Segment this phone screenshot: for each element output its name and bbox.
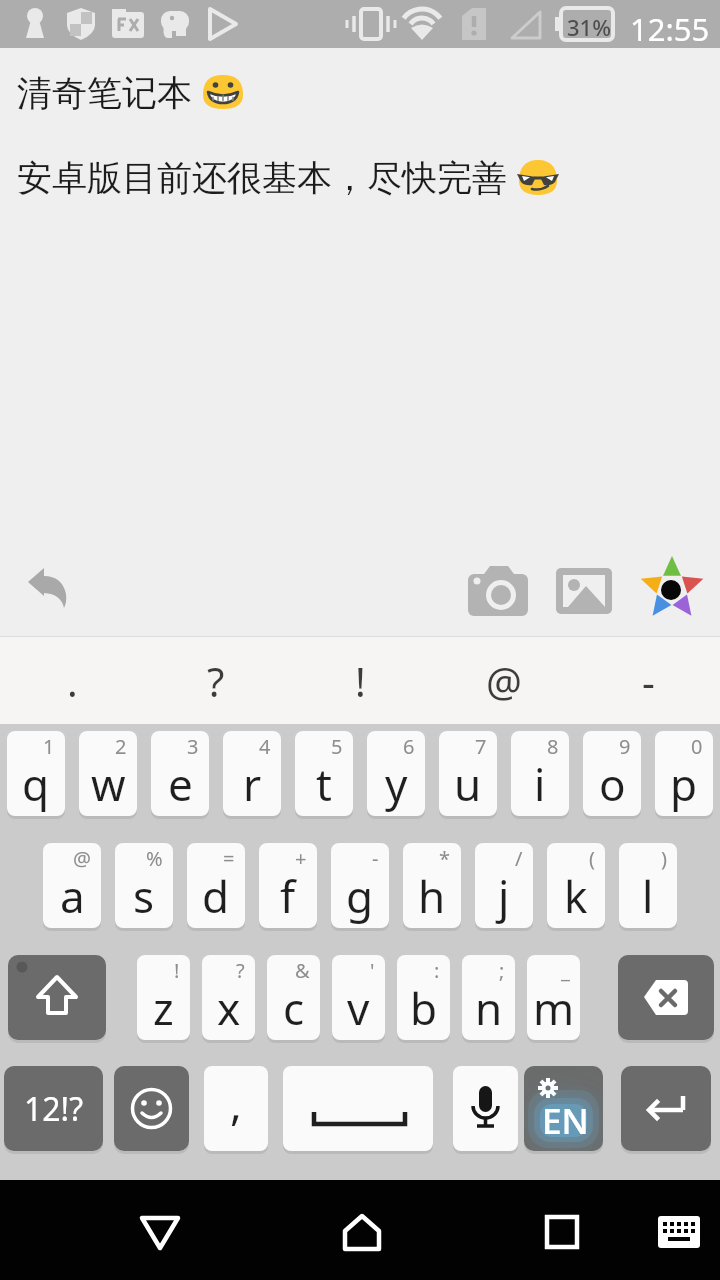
button[interactable]: 3: [151, 731, 209, 816]
staticText: ,: [230, 1073, 242, 1133]
button[interactable]: [140, 1212, 180, 1252]
staticText: o: [599, 754, 626, 814]
button[interactable]: 6: [367, 731, 425, 816]
button[interactable]: [556, 568, 612, 614]
button[interactable]: =: [187, 843, 245, 928]
button[interactable]: +: [259, 843, 317, 928]
staticText: 3: [187, 733, 199, 760]
staticText: -: [372, 845, 379, 872]
button[interactable]: 7: [439, 731, 497, 816]
button[interactable]: @: [43, 843, 101, 928]
staticText: 2: [115, 733, 127, 760]
button[interactable]: [283, 1066, 433, 1151]
staticText: @: [486, 654, 522, 708]
button[interactable]: [658, 1216, 700, 1248]
button[interactable]: !: [288, 637, 432, 724]
staticText: i: [534, 754, 546, 814]
button[interactable]: !: [137, 955, 190, 1040]
staticText: @: [73, 845, 91, 872]
staticText: &: [295, 957, 310, 984]
button[interactable]: :: [397, 955, 450, 1040]
staticText: u: [454, 754, 482, 814]
button[interactable]: [544, 1214, 580, 1250]
button[interactable]: 4: [223, 731, 281, 816]
button[interactable]: [453, 1066, 518, 1151]
button[interactable]: ': [332, 955, 385, 1040]
staticText: z: [153, 978, 174, 1038]
staticText: 12!?: [24, 1087, 84, 1131]
button[interactable]: 8: [511, 731, 569, 816]
staticText: c: [283, 978, 305, 1038]
staticText: %: [146, 845, 163, 872]
staticText: s: [133, 866, 155, 926]
staticText: b: [410, 978, 438, 1038]
staticText: :: [434, 957, 440, 984]
staticText: y: [385, 754, 408, 814]
button[interactable]: [637, 554, 707, 624]
button[interactable]: ?: [144, 637, 288, 724]
button[interactable]: [8, 955, 106, 1040]
staticText: !: [174, 957, 180, 984]
staticText: ': [370, 957, 375, 984]
staticText: j: [498, 866, 510, 926]
button[interactable]: 0: [655, 731, 713, 816]
button[interactable]: -: [331, 843, 389, 928]
button[interactable]: [114, 1066, 189, 1151]
staticText: _: [561, 957, 570, 984]
button[interactable]: 9: [583, 731, 641, 816]
staticText: a: [60, 866, 85, 926]
staticText: 7: [475, 733, 487, 760]
staticText: 安卓版目前还很基本，尽快完善: [17, 153, 517, 201]
staticText: 0: [691, 733, 703, 760]
button[interactable]: EN: [524, 1066, 603, 1151]
staticText: d: [202, 866, 230, 926]
button[interactable]: *: [403, 843, 461, 928]
button[interactable]: [28, 568, 68, 612]
staticText: x: [217, 978, 241, 1038]
staticText: -: [642, 654, 655, 708]
button[interactable]: (: [547, 843, 605, 928]
staticText: 5: [331, 733, 343, 760]
staticText: p: [670, 754, 698, 814]
button[interactable]: .: [0, 637, 144, 724]
staticText: 9: [619, 733, 631, 760]
staticText: 31%: [567, 12, 611, 42]
button[interactable]: _: [527, 955, 580, 1040]
staticText: q: [22, 754, 50, 814]
staticText: 6: [403, 733, 415, 760]
staticText: ?: [236, 957, 245, 984]
button[interactable]: ): [619, 843, 677, 928]
staticText: e: [168, 754, 193, 814]
button[interactable]: [618, 955, 714, 1040]
staticText: g: [346, 866, 374, 926]
button[interactable]: [468, 566, 528, 616]
staticText: +: [295, 845, 307, 872]
button[interactable]: 5: [295, 731, 353, 816]
staticText: !: [355, 654, 366, 708]
staticText: m: [533, 978, 575, 1038]
button[interactable]: ;: [462, 955, 515, 1040]
button[interactable]: &: [267, 955, 320, 1040]
button[interactable]: %: [115, 843, 173, 928]
button[interactable]: ,: [204, 1066, 268, 1151]
staticText: 1: [43, 733, 55, 760]
staticText: (: [589, 845, 595, 872]
button[interactable]: 2: [79, 731, 137, 816]
staticText: k: [564, 866, 588, 926]
button[interactable]: -: [576, 637, 720, 724]
staticText: n: [475, 978, 503, 1038]
button[interactable]: 12!?: [4, 1066, 103, 1151]
button[interactable]: ?: [202, 955, 255, 1040]
button[interactable]: 1: [7, 731, 65, 816]
button[interactable]: @: [432, 637, 576, 724]
staticText: .: [67, 654, 78, 708]
staticText: t: [316, 754, 332, 814]
staticText: h: [418, 866, 446, 926]
button[interactable]: /: [475, 843, 533, 928]
staticText: /: [515, 845, 523, 872]
staticText: l: [642, 866, 654, 926]
staticText: EN: [542, 1097, 589, 1145]
button[interactable]: [342, 1212, 382, 1252]
staticText: w: [91, 754, 126, 814]
button[interactable]: [621, 1066, 711, 1151]
